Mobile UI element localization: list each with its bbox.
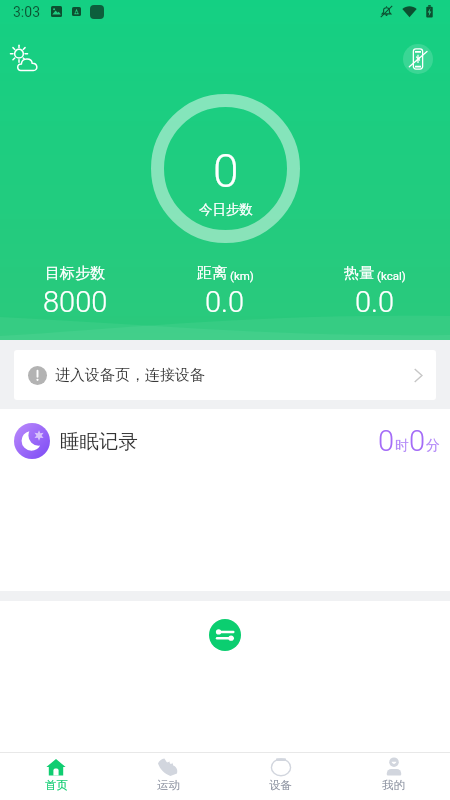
staticText: 0.0 xyxy=(205,285,245,319)
staticText: 分 xyxy=(426,437,440,455)
staticText: 3:03 xyxy=(13,4,40,20)
button[interactable]: Weather xyxy=(10,45,40,75)
staticText: (km) xyxy=(230,269,254,282)
staticText: 0.0 xyxy=(355,285,395,319)
button[interactable]: 设备 xyxy=(224,753,337,800)
button[interactable]: 运动 xyxy=(112,753,224,800)
button[interactable]: 睡眠记录 xyxy=(0,409,450,473)
staticText: 今日步数 xyxy=(199,201,253,218)
staticText: (kcal) xyxy=(377,269,406,282)
staticText: 0 xyxy=(213,144,239,198)
staticText: 进入设备页，连接设备 xyxy=(55,366,205,385)
staticText: 运动 xyxy=(157,778,180,792)
staticText: 距离 xyxy=(197,264,227,283)
button[interactable]: 首页 xyxy=(0,753,112,800)
button[interactable]: Adjust settings xyxy=(209,619,241,651)
staticText: 我的 xyxy=(382,778,405,792)
staticText: 0 xyxy=(409,424,426,458)
button[interactable]: 进入设备页，连接设备 xyxy=(14,350,436,400)
staticText: 时 xyxy=(395,437,409,455)
button[interactable]: Device not connected xyxy=(403,44,433,74)
staticText: 睡眠记录 xyxy=(60,429,138,454)
staticText: 目标步数 xyxy=(45,264,105,283)
staticText: 首页 xyxy=(45,778,68,792)
staticText: 0 xyxy=(378,424,395,458)
button[interactable]: 我的 xyxy=(337,753,450,800)
staticText: 热量 xyxy=(344,264,374,283)
staticText: 8000 xyxy=(43,285,108,319)
staticText: 设备 xyxy=(269,778,292,792)
